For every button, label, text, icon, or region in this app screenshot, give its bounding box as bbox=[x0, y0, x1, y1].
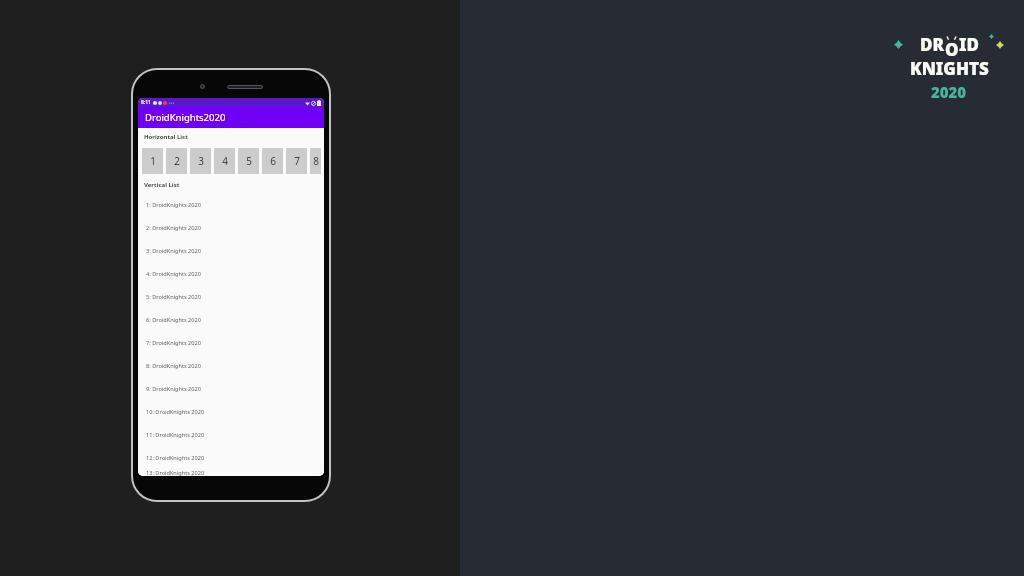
staticText: 3 bbox=[198, 154, 204, 168]
staticText: DR bbox=[920, 33, 944, 56]
staticText: Horizontal List bbox=[144, 133, 188, 141]
staticText: 2: DroidKnights 2020 bbox=[146, 224, 201, 232]
staticText: 2 bbox=[174, 154, 180, 168]
button[interactable]: 7 bbox=[286, 148, 307, 174]
button[interactable]: 10: DroidKnights 2020 bbox=[138, 400, 324, 423]
staticText: 6 bbox=[270, 154, 276, 168]
staticText: 4: DroidKnights 2020 bbox=[146, 270, 201, 278]
staticText: 10: DroidKnights 2020 bbox=[146, 408, 205, 416]
button[interactable]: 3 bbox=[190, 148, 211, 174]
staticText: 8: DroidKnights 2020 bbox=[146, 362, 201, 370]
button[interactable]: 11: DroidKnights 2020 bbox=[138, 423, 324, 446]
button[interactable]: 13: DroidKnights 2020 bbox=[138, 469, 324, 476]
button[interactable]: 6 bbox=[262, 148, 283, 174]
staticText: 5 bbox=[246, 154, 252, 168]
staticText: 12: DroidKnights 2020 bbox=[146, 454, 205, 462]
button[interactable]: 5 bbox=[238, 148, 259, 174]
staticText: O bbox=[945, 38, 959, 56]
button[interactable]: 9: DroidKnights 2020 bbox=[138, 377, 324, 400]
button[interactable]: 2: DroidKnights 2020 bbox=[138, 216, 324, 239]
button[interactable]: 4 bbox=[214, 148, 235, 174]
staticText: 13: DroidKnights 2020 bbox=[146, 469, 205, 476]
staticText: 7 bbox=[294, 154, 300, 168]
button[interactable]: 8 bbox=[310, 148, 321, 174]
staticText: 11: DroidKnights 2020 bbox=[146, 431, 205, 439]
button[interactable]: 2 bbox=[166, 148, 187, 174]
staticText: 5: DroidKnights 2020 bbox=[146, 293, 201, 301]
staticText: KNIGHTS bbox=[910, 57, 989, 80]
staticText: 6: DroidKnights 2020 bbox=[146, 316, 201, 324]
staticText: 1 bbox=[150, 154, 156, 168]
button[interactable]: 4: DroidKnights 2020 bbox=[138, 262, 324, 285]
staticText: 1: DroidKnights 2020 bbox=[146, 201, 201, 209]
staticText: 4 bbox=[222, 154, 228, 168]
button[interactable]: 8: DroidKnights 2020 bbox=[138, 354, 324, 377]
staticText: 3: DroidKnights 2020 bbox=[146, 247, 201, 255]
button[interactable]: DroidKnights2020 bbox=[138, 107, 324, 128]
staticText: 7: DroidKnights 2020 bbox=[146, 339, 201, 347]
button[interactable]: 1 bbox=[142, 148, 163, 174]
button[interactable]: 12: DroidKnights 2020 bbox=[138, 446, 324, 469]
staticText: 9: DroidKnights 2020 bbox=[146, 385, 201, 393]
staticText: Vertical List bbox=[144, 181, 180, 189]
staticText: ID bbox=[959, 33, 979, 56]
button[interactable]: 6: DroidKnights 2020 bbox=[138, 308, 324, 331]
button[interactable]: 7: DroidKnights 2020 bbox=[138, 331, 324, 354]
staticText: 8 bbox=[313, 154, 319, 168]
staticText: 2020 bbox=[931, 82, 967, 101]
button[interactable]: 1: DroidKnights 2020 bbox=[138, 193, 324, 216]
button[interactable]: 5: DroidKnights 2020 bbox=[138, 285, 324, 308]
staticText: 8:11 bbox=[141, 99, 151, 106]
staticText: DroidKnights2020 bbox=[145, 111, 226, 124]
button[interactable]: 3: DroidKnights 2020 bbox=[138, 239, 324, 262]
